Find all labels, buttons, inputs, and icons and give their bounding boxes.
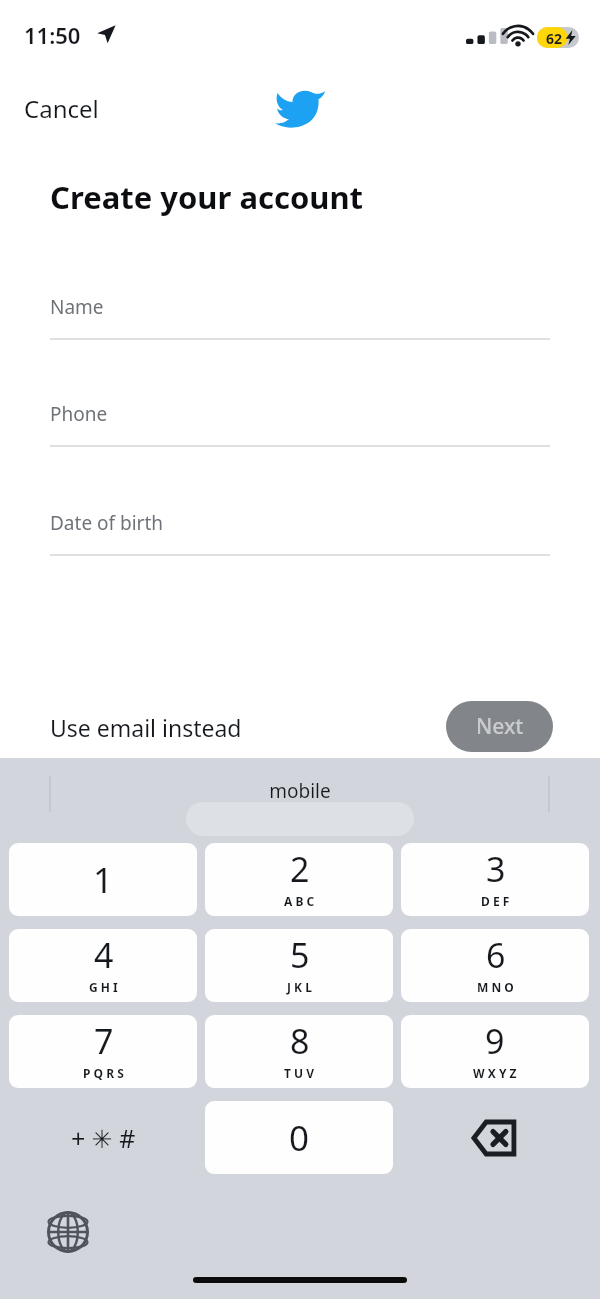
staticText: Use email instead [50, 712, 242, 743]
staticText: 0 [289, 1114, 310, 1162]
button[interactable]: Next [446, 701, 553, 752]
staticText: A B C [284, 893, 315, 909]
staticText: G H I [89, 979, 118, 995]
button[interactable]: 4 [9, 929, 197, 1002]
button[interactable]: Change keyboard [36, 1200, 100, 1264]
button[interactable]: + ✳ # [9, 1101, 197, 1174]
button[interactable]: Use email instead [38, 702, 254, 752]
staticText: 9 [485, 1018, 505, 1064]
staticText: 4 [94, 932, 114, 978]
staticText: mobile [269, 778, 331, 804]
staticText: D E F [481, 893, 510, 909]
staticText: 62 [546, 29, 563, 48]
staticText: 1 [93, 856, 114, 904]
button[interactable]: 7 [9, 1015, 197, 1088]
staticText: + ✳ # [71, 1121, 136, 1155]
staticText: Create your account [50, 176, 364, 218]
staticText: 8 [290, 1018, 310, 1064]
button[interactable]: 2 [205, 843, 393, 916]
staticText: 11:50 [24, 20, 81, 50]
staticText: P Q R S [83, 1065, 124, 1081]
staticText: Next [476, 712, 524, 741]
button[interactable]: 3 [401, 843, 589, 916]
staticText: T U V [284, 1065, 315, 1081]
staticText: J K L [287, 979, 312, 995]
button[interactable]: 5 [205, 929, 393, 1002]
button[interactable]: 9 [401, 1015, 589, 1088]
staticText: Phone [50, 401, 108, 427]
staticText: Date of birth [50, 510, 164, 536]
staticText: 7 [94, 1018, 114, 1064]
button[interactable]: Name [50, 292, 550, 340]
button[interactable]: Backspace [401, 1101, 589, 1174]
staticText: Name [50, 294, 104, 320]
button[interactable]: Cancel [14, 82, 109, 134]
staticText: Cancel [24, 92, 99, 125]
button[interactable]: 8 [205, 1015, 393, 1088]
button[interactable]: 1 [9, 843, 197, 916]
button[interactable]: 0 [205, 1101, 393, 1174]
staticText: 2 [290, 846, 310, 892]
staticText: 3 [486, 846, 506, 892]
button[interactable]: Date of birth [50, 508, 550, 556]
button[interactable]: 6 [401, 929, 589, 1002]
staticText: W X Y Z [473, 1065, 517, 1081]
staticText: M N O [477, 979, 514, 995]
staticText: 6 [486, 932, 506, 978]
staticText: 5 [290, 932, 310, 978]
button[interactable]: Phone [50, 399, 550, 447]
